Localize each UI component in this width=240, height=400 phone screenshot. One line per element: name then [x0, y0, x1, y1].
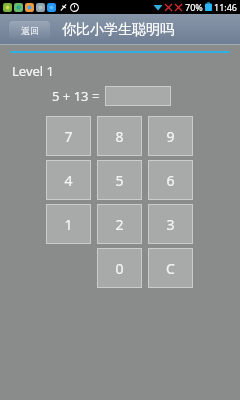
staticText: 2: [115, 215, 124, 234]
staticText: 你比小学生聪明吗: [62, 21, 174, 39]
button[interactable]: 8: [97, 116, 142, 156]
staticText: 4: [64, 171, 73, 190]
button[interactable]: 1: [46, 204, 91, 244]
button[interactable]: 9: [148, 116, 193, 156]
staticText: C: [166, 259, 175, 278]
staticText: 5 + 13 =: [52, 87, 100, 105]
button[interactable]: 4: [46, 160, 91, 200]
button[interactable]: 0: [97, 248, 142, 288]
staticText: 7: [64, 127, 73, 146]
staticText: 9: [166, 127, 175, 146]
button[interactable]: 7: [46, 116, 91, 156]
button[interactable]: 2: [97, 204, 142, 244]
button[interactable]: 3: [148, 204, 193, 244]
staticText: Level 1: [12, 62, 54, 80]
staticText: 返回: [21, 25, 39, 36]
button[interactable]: 返回: [9, 21, 50, 39]
staticText: 8: [115, 127, 124, 146]
button[interactable]: Answer input: [105, 86, 171, 106]
button[interactable]: 5: [97, 160, 142, 200]
button[interactable]: C: [148, 248, 193, 288]
staticText: 5: [115, 171, 124, 190]
staticText: 3: [166, 215, 175, 234]
staticText: 1: [64, 215, 73, 234]
staticText: 0: [115, 259, 124, 278]
staticText: 70%: [185, 1, 203, 13]
staticText: 11:46: [214, 1, 238, 13]
staticText: 6: [166, 171, 175, 190]
button[interactable]: 6: [148, 160, 193, 200]
